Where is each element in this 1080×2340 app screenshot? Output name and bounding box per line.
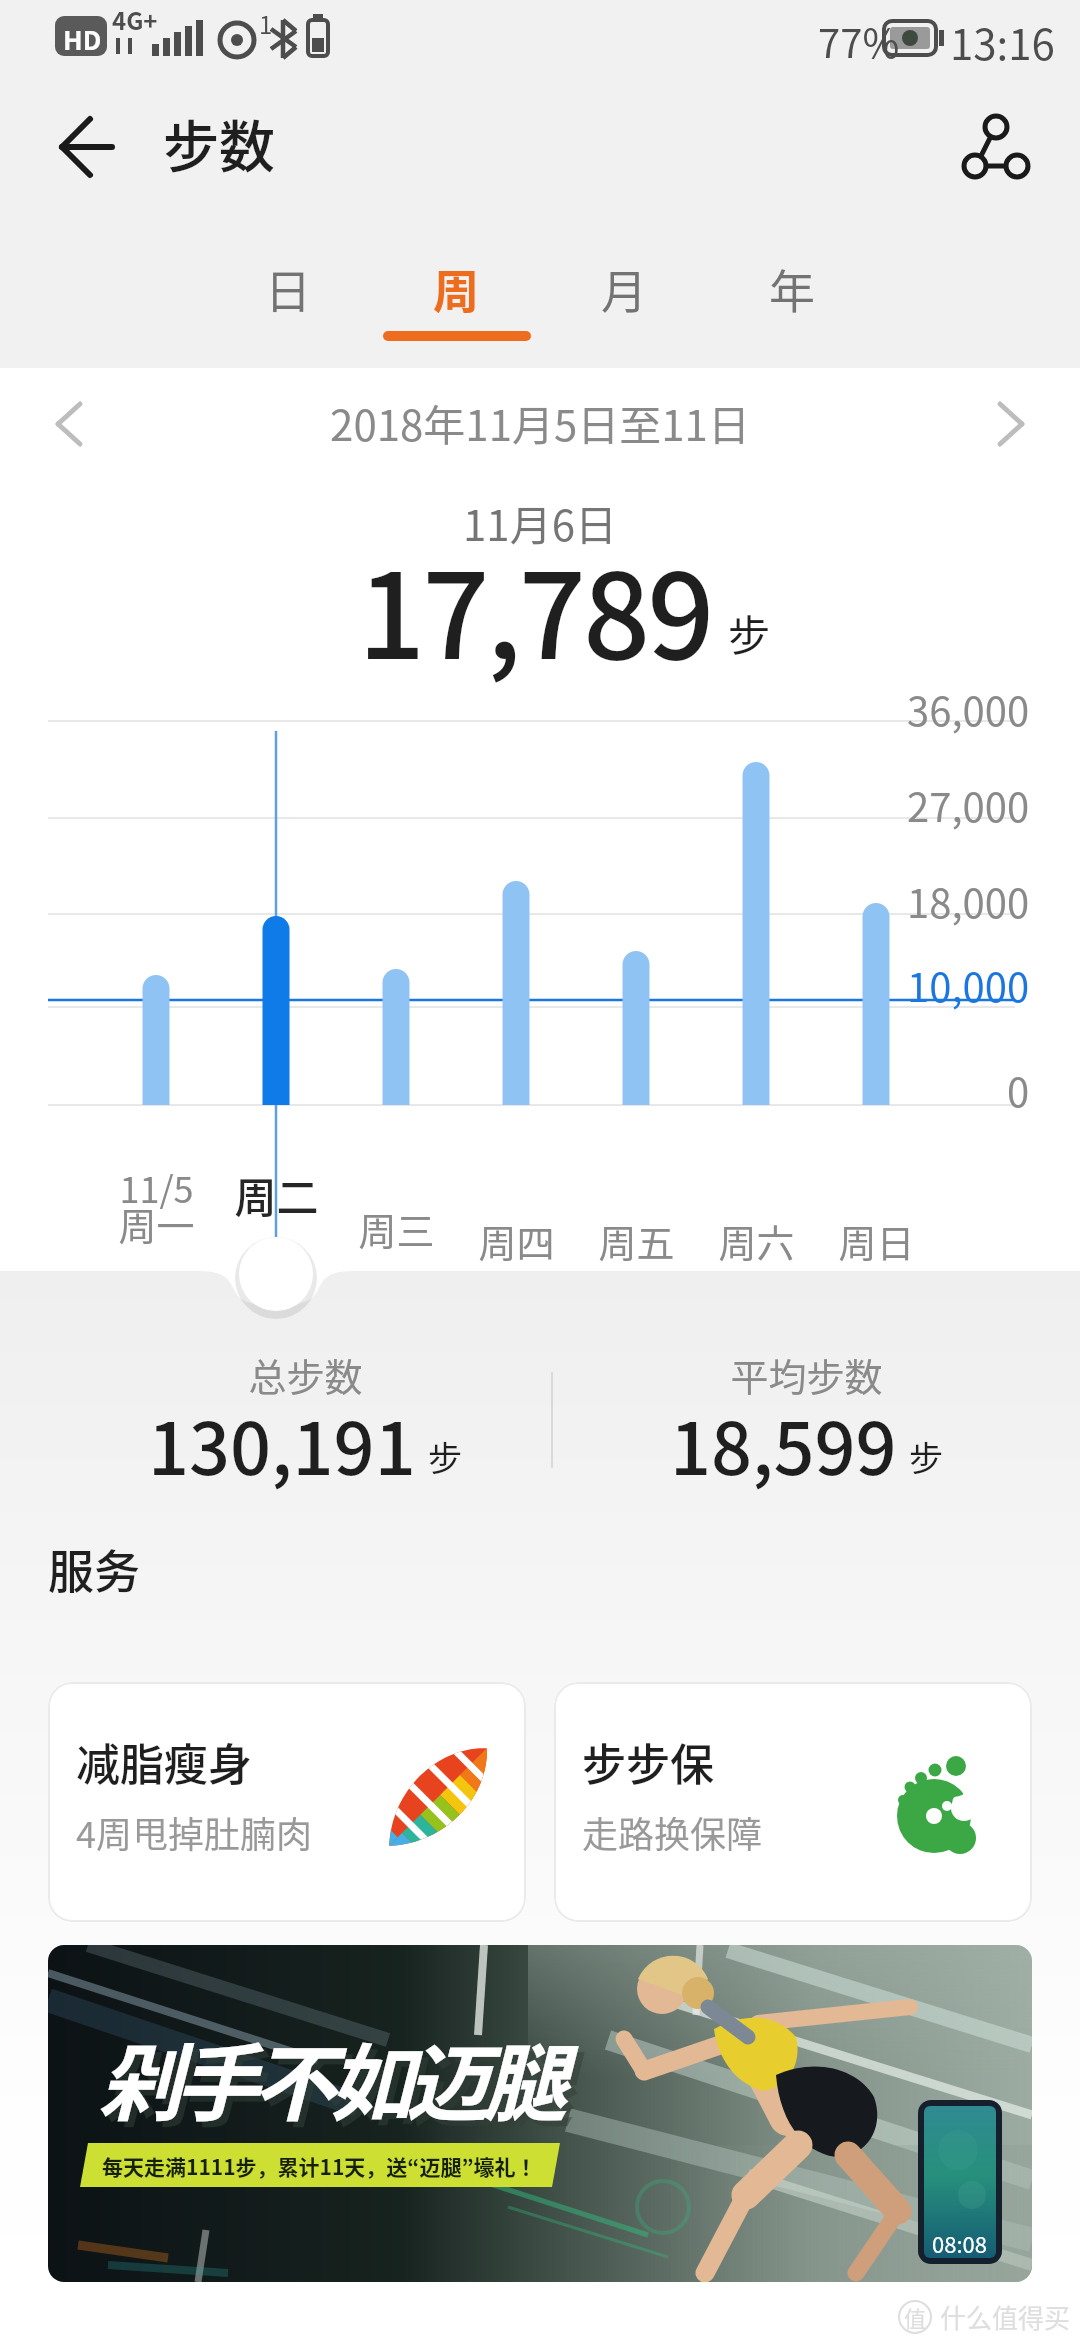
staticText: 77% bbox=[818, 12, 900, 70]
staticText: 服务 bbox=[48, 1535, 140, 1602]
button[interactable] bbox=[20, 380, 130, 470]
staticText: 36,000 bbox=[907, 680, 1030, 738]
staticText: 减脂瘦身 bbox=[76, 1730, 252, 1794]
button[interactable]: 日 bbox=[204, 238, 372, 338]
staticText: 周四 bbox=[478, 1213, 555, 1268]
staticText: 17,789 bbox=[358, 522, 712, 693]
button[interactable]: 月 bbox=[540, 238, 708, 338]
button[interactable]: 步步保 bbox=[554, 1682, 1032, 1922]
staticText: 周 bbox=[433, 255, 479, 322]
button[interactable] bbox=[950, 380, 1060, 470]
staticText: 08:08 bbox=[932, 2227, 987, 2259]
staticText: 步 bbox=[909, 1432, 943, 1481]
staticText: 年 bbox=[769, 255, 815, 322]
staticText: 走路换保障 bbox=[582, 1806, 763, 1858]
staticText: 步 bbox=[728, 602, 771, 663]
staticText: 日 bbox=[265, 255, 311, 322]
staticText: 11月6日 bbox=[463, 492, 617, 553]
staticText: 步步保 bbox=[582, 1730, 714, 1794]
staticText: 周一 bbox=[118, 1196, 195, 1251]
staticText: 4周甩掉肚腩肉 bbox=[76, 1806, 312, 1858]
staticText: 2018年11月5日至11日 bbox=[330, 392, 750, 453]
staticText: 10,000 bbox=[907, 956, 1030, 1014]
staticText: 月 bbox=[601, 255, 647, 322]
staticText: 每天走满1111步，累计11天，送“迈腿”壕礼！ bbox=[102, 2151, 537, 2181]
button[interactable]: 年 bbox=[708, 238, 876, 338]
staticText: 平均步数 bbox=[730, 1347, 883, 1402]
staticText: 周日 bbox=[838, 1213, 915, 1268]
staticText: 11/5 bbox=[119, 1161, 194, 1213]
staticText: 13:16 bbox=[950, 11, 1055, 72]
staticText: 剁手不如迈腿 bbox=[104, 2023, 567, 2145]
staticText: 剁手不如迈腿 bbox=[98, 2017, 561, 2139]
staticText: 步数 bbox=[163, 102, 275, 183]
staticText: HD bbox=[63, 20, 102, 58]
staticText: 总步数 bbox=[248, 1347, 363, 1402]
staticText: 值 bbox=[904, 2301, 927, 2333]
staticText: 0 bbox=[1007, 1061, 1030, 1119]
staticText: 周三 bbox=[358, 1201, 435, 1256]
staticText: 130,191 bbox=[148, 1391, 416, 1495]
staticText: 周六 bbox=[718, 1213, 795, 1268]
staticText: 4G+ bbox=[112, 2, 158, 37]
staticText: 周二 bbox=[234, 1164, 319, 1225]
staticText: 27,000 bbox=[907, 776, 1030, 834]
staticText: 步 bbox=[428, 1432, 462, 1481]
staticText: 什么值得买 bbox=[940, 2298, 1071, 2336]
button[interactable]: 周 bbox=[372, 238, 540, 338]
button[interactable]: 剁手不如迈腿 bbox=[48, 1945, 1032, 2282]
button[interactable] bbox=[940, 100, 1050, 200]
staticText: 18,599 bbox=[670, 1391, 897, 1495]
staticText: 1 bbox=[259, 6, 273, 41]
button[interactable] bbox=[40, 105, 130, 195]
staticText: 周五 bbox=[598, 1213, 675, 1268]
staticText: 18,000 bbox=[907, 872, 1030, 930]
button[interactable]: 减脂瘦身 bbox=[48, 1682, 526, 1922]
